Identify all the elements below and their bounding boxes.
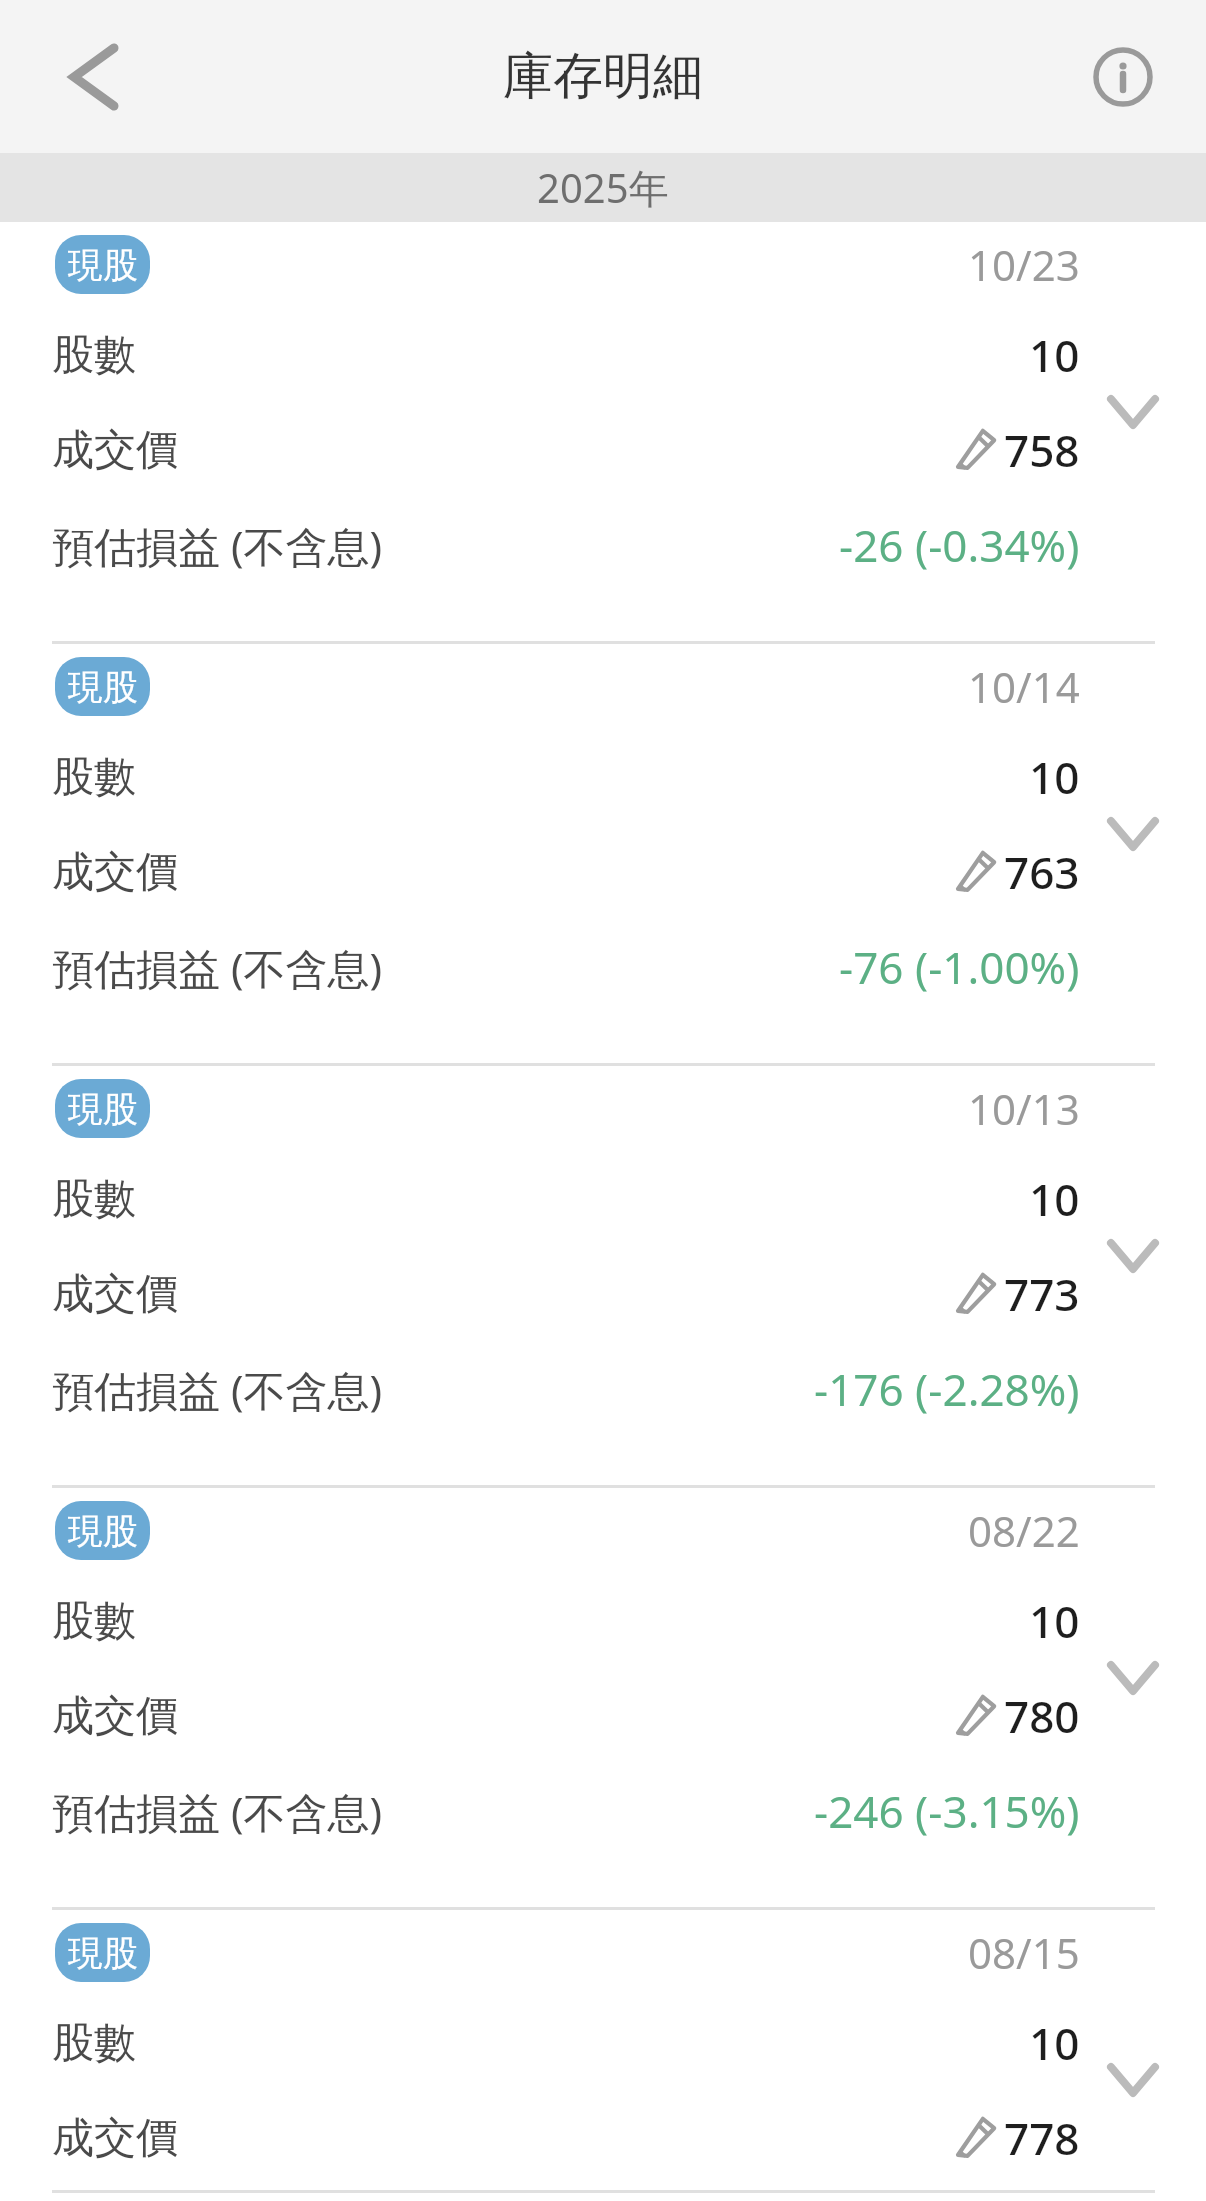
staticText: 現股: [68, 1931, 138, 1975]
button[interactable]: 現股: [0, 1910, 1206, 2190]
staticText: 10: [1029, 1169, 1080, 1229]
button[interactable]: Back: [26, 15, 150, 139]
staticText: 現股: [68, 1087, 138, 1131]
staticText: 10: [1029, 1591, 1080, 1651]
staticText: 成交價: [52, 2112, 178, 2165]
staticText: 10: [1029, 325, 1080, 385]
staticText: 773: [1004, 1264, 1080, 1324]
staticText: 10: [1029, 747, 1080, 807]
staticText: 成交價: [52, 846, 178, 899]
staticText: 08/22: [968, 1502, 1080, 1559]
staticText: 778: [1004, 2108, 1080, 2168]
staticText: 2025年: [537, 160, 669, 215]
button[interactable]: Expand: [1088, 1638, 1178, 1718]
staticText: 現股: [68, 243, 138, 287]
button[interactable]: 現股: [0, 644, 1206, 1063]
button[interactable]: Info: [1068, 22, 1178, 132]
button[interactable]: Expand: [1088, 2040, 1178, 2120]
staticText: 10/14: [968, 658, 1080, 715]
staticText: 成交價: [52, 1690, 178, 1743]
button[interactable]: 現股: [0, 222, 1206, 641]
staticText: 10/13: [968, 1080, 1080, 1137]
staticText: 股數: [52, 1595, 136, 1648]
staticText: 現股: [68, 665, 138, 709]
staticText: 現股: [68, 1509, 138, 1553]
staticText: -76 (-1.00%): [839, 937, 1080, 997]
staticText: 股數: [52, 1173, 136, 1226]
button[interactable]: Expand: [1088, 372, 1178, 452]
staticText: 10: [1029, 2013, 1080, 2073]
staticText: -26 (-0.34%): [839, 515, 1080, 575]
button[interactable]: 現股: [0, 1066, 1206, 1485]
staticText: 預估損益 (不含息): [52, 1361, 383, 1418]
staticText: 股數: [52, 2017, 136, 2070]
staticText: 預估損益 (不含息): [52, 939, 383, 996]
staticText: 庫存明細: [503, 45, 703, 108]
button[interactable]: 現股: [0, 1488, 1206, 1907]
staticText: 股數: [52, 329, 136, 382]
staticText: -246 (-3.15%): [814, 1781, 1080, 1841]
button[interactable]: Expand: [1088, 794, 1178, 874]
staticText: 預估損益 (不含息): [52, 1783, 383, 1840]
staticText: 08/15: [968, 1924, 1080, 1981]
staticText: 780: [1004, 1686, 1080, 1746]
staticText: 股數: [52, 751, 136, 804]
staticText: 成交價: [52, 1268, 178, 1321]
button[interactable]: Expand: [1088, 1216, 1178, 1296]
staticText: 預估損益 (不含息): [52, 517, 383, 574]
staticText: 763: [1004, 842, 1080, 902]
staticText: 成交價: [52, 424, 178, 477]
staticText: 758: [1004, 420, 1080, 480]
staticText: -176 (-2.28%): [814, 1359, 1080, 1419]
staticText: 10/23: [968, 236, 1080, 293]
